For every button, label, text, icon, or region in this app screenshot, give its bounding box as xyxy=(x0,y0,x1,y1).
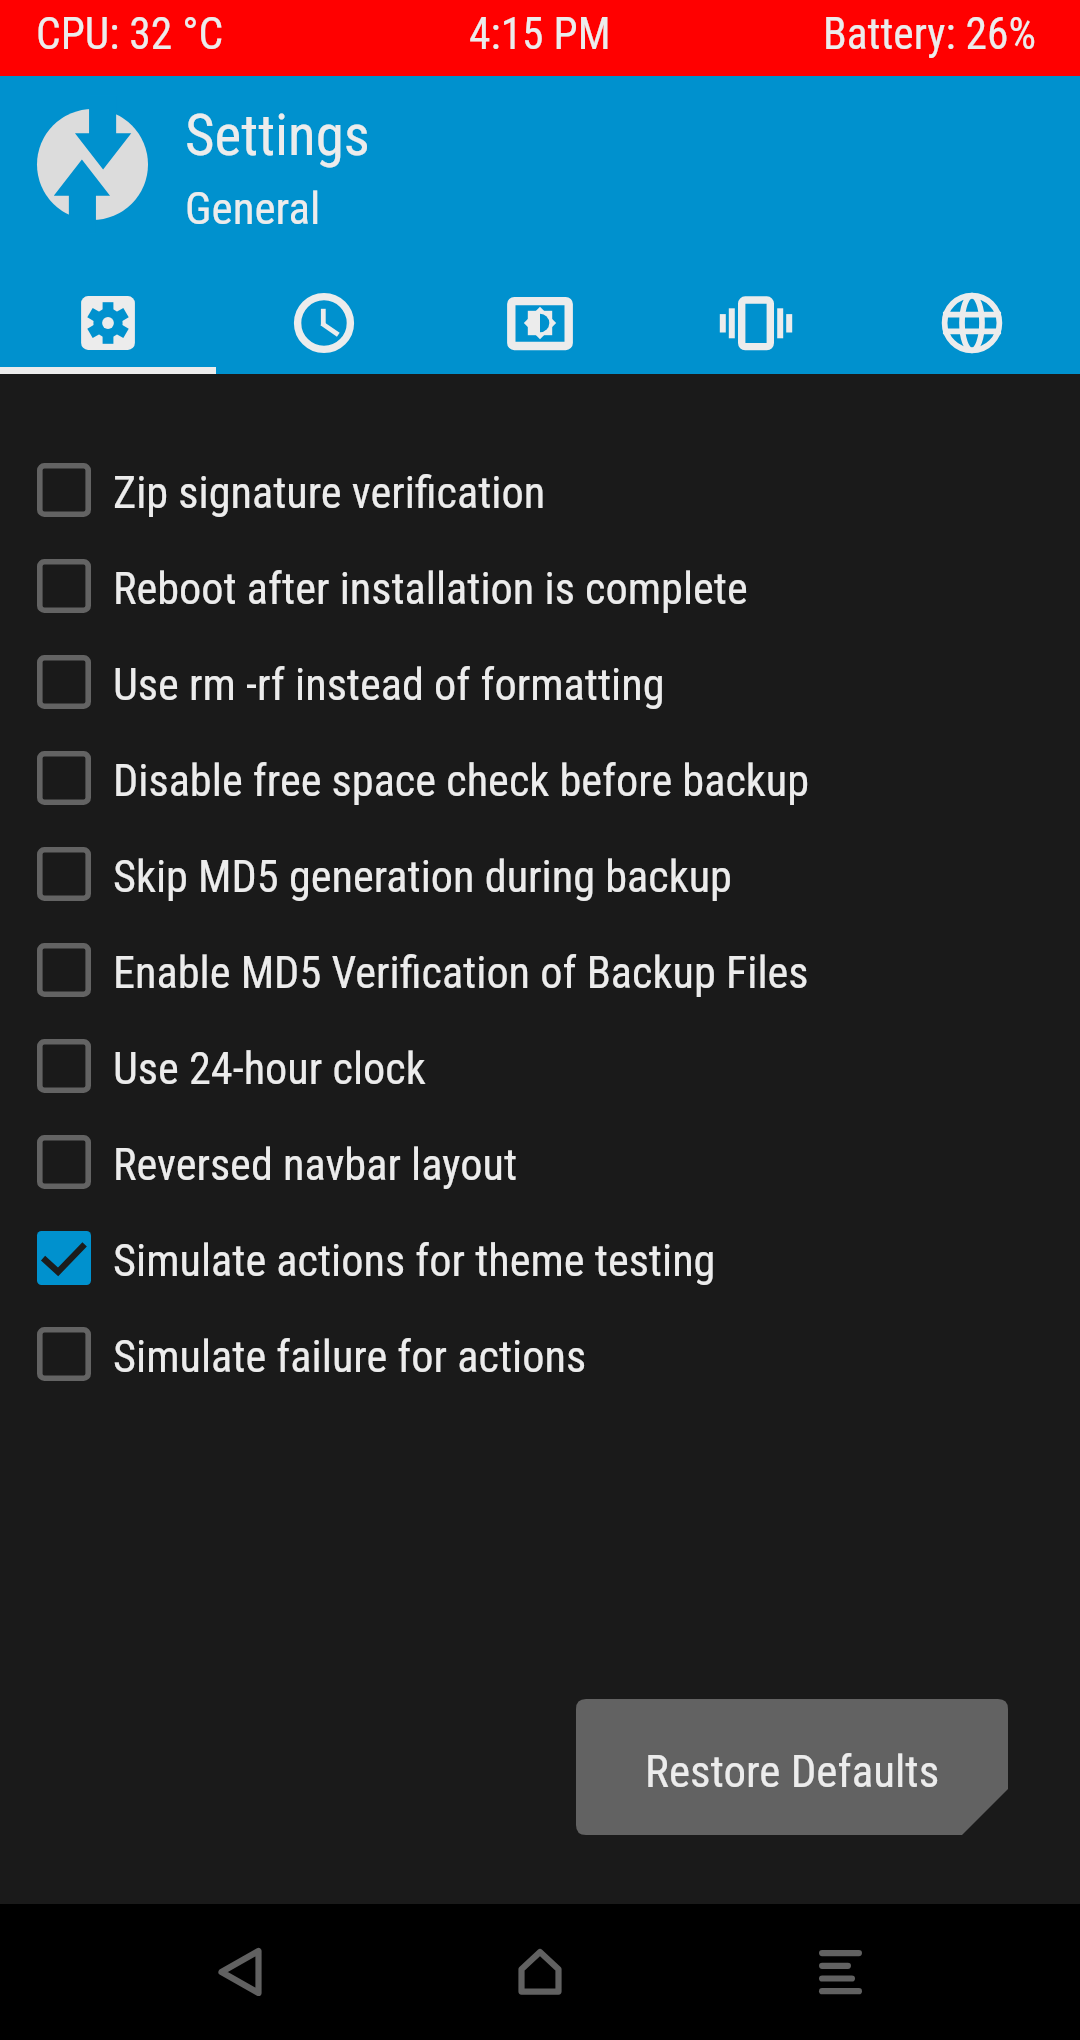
button[interactable]: Language xyxy=(864,274,1080,374)
button[interactable]: Time xyxy=(216,274,432,374)
button[interactable]: Screen xyxy=(432,274,648,374)
button[interactable]: Home xyxy=(480,1904,600,2040)
staticText: 4:15 PM xyxy=(469,9,611,60)
staticText: CPU: 32 °C xyxy=(36,9,224,60)
staticText: Zip signature verification xyxy=(113,467,546,519)
button[interactable]: Restore Defaults xyxy=(576,1699,1008,1835)
button[interactable]: Disable free space check before backup xyxy=(0,730,1080,826)
button[interactable]: Reversed navbar layout xyxy=(0,1114,1080,1210)
staticText: Simulate actions for theme testing xyxy=(113,1235,716,1287)
staticText: Restore Defaults xyxy=(645,1745,940,1798)
staticText: Use rm -rf instead of formatting xyxy=(113,659,665,711)
staticText: Skip MD5 generation during backup xyxy=(113,851,732,903)
staticText: Simulate failure for actions xyxy=(113,1331,587,1383)
button[interactable]: Simulate actions for theme testing xyxy=(0,1210,1080,1306)
button[interactable]: Vibration xyxy=(648,274,864,374)
staticText: Enable MD5 Verification of Backup Files xyxy=(113,947,809,999)
button[interactable]: Zip signature verification xyxy=(0,442,1080,538)
staticText: Use 24-hour clock xyxy=(113,1043,426,1095)
staticText: Disable free space check before backup xyxy=(113,755,810,807)
button[interactable]: Use rm -rf instead of formatting xyxy=(0,634,1080,730)
button[interactable]: Simulate failure for actions xyxy=(0,1306,1080,1402)
staticText: Reboot after installation is complete xyxy=(113,563,748,615)
button[interactable]: Skip MD5 generation during backup xyxy=(0,826,1080,922)
button[interactable]: Enable MD5 Verification of Backup Files xyxy=(0,922,1080,1018)
button[interactable]: Use 24-hour clock xyxy=(0,1018,1080,1114)
staticText: Battery: 26% xyxy=(823,9,1037,60)
staticText: Settings xyxy=(185,102,370,169)
staticText: General xyxy=(185,182,321,235)
button[interactable]: Reboot after installation is complete xyxy=(0,538,1080,634)
button[interactable]: Back xyxy=(180,1904,300,2040)
button[interactable]: Settings xyxy=(0,274,216,374)
staticText: Reversed navbar layout xyxy=(113,1139,517,1191)
button[interactable]: Recent apps xyxy=(780,1904,900,2040)
